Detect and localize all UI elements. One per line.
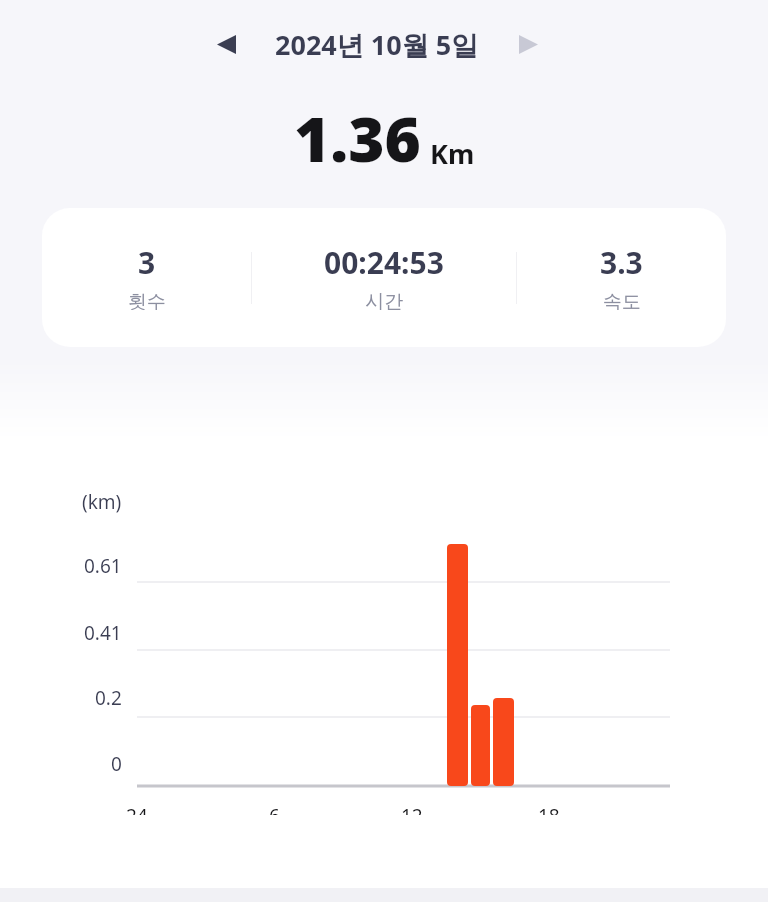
staticText: Km — [430, 135, 475, 172]
staticText: 3 — [138, 242, 156, 283]
staticText: 12 — [401, 803, 423, 815]
staticText: 0.2 — [95, 685, 122, 711]
button[interactable]: Previous day — [198, 16, 254, 72]
button[interactable]: 3.3 — [517, 242, 726, 314]
staticText: 18 — [538, 803, 560, 815]
button[interactable]: Next day — [500, 16, 556, 72]
staticText: (km) — [82, 489, 122, 515]
staticText: 2024년 10월 5일 — [275, 26, 479, 63]
staticText: 3.3 — [600, 242, 643, 283]
staticText: 시간 — [365, 290, 403, 314]
staticText: 0.61 — [84, 553, 122, 579]
staticText: 0.41 — [84, 620, 122, 646]
staticText: 0 — [111, 751, 122, 777]
staticText: 1.36 — [294, 96, 421, 180]
staticText: 6 — [269, 803, 280, 815]
staticText: 속도 — [603, 290, 641, 314]
button[interactable]: 3 — [42, 242, 251, 314]
staticText: 00:24:53 — [324, 242, 444, 283]
button[interactable]: 3 — [42, 208, 726, 347]
staticText: 24 — [126, 803, 148, 815]
staticText: 횟수 — [128, 290, 166, 314]
button[interactable]: 00:24:53 — [252, 242, 516, 314]
